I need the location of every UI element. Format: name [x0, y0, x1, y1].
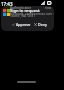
staticText: Deny: [38, 22, 47, 27]
staticText: Microsoft user@contoso.com signed: [10, 12, 54, 16]
staticText: Seattle, WA 08:21: [10, 14, 36, 18]
staticText: Approve: [16, 22, 31, 27]
staticText: 17:43: [1, 1, 13, 7]
staticText: now: [45, 6, 52, 10]
button[interactable]: Approve: [12, 21, 31, 28]
staticText: Sign in request: [10, 8, 40, 13]
button[interactable]: Deny: [34, 21, 47, 28]
button[interactable]: Authenticator: [1, 6, 54, 31]
staticText: Authenticator: [10, 6, 32, 10]
